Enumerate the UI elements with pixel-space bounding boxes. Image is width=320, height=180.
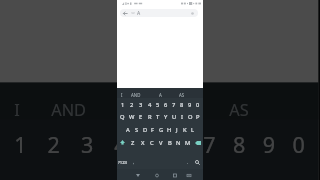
- button[interactable]: 1: [118, 98, 127, 111]
- button[interactable]: .: [183, 156, 192, 169]
- button[interactable]: 9: [255, 120, 285, 168]
- button[interactable]: T: [154, 110, 162, 123]
- button[interactable]: AND: [36, 90, 103, 127]
- button[interactable]: Z: [128, 136, 138, 149]
- button[interactable]: 8: [226, 120, 255, 168]
- button[interactable]: Search: [192, 156, 203, 169]
- button[interactable]: 1: [3, 120, 36, 168]
- button[interactable]: Y: [162, 110, 170, 123]
- button[interactable]: 2: [36, 120, 70, 168]
- button[interactable]: E: [136, 110, 145, 123]
- staticText: O: [188, 113, 193, 121]
- staticText: 1: [121, 101, 125, 109]
- staticText: 7: [203, 131, 218, 160]
- staticText: I: [14, 97, 21, 120]
- button[interactable]: A: [123, 123, 132, 136]
- button[interactable]: J: [173, 123, 181, 136]
- button[interactable]: M: [183, 136, 192, 149]
- button[interactable]: 3: [70, 120, 103, 168]
- button[interactable]: G: [157, 123, 165, 136]
- staticText: R: [114, 175, 129, 180]
- button[interactable]: Home: [153, 171, 161, 179]
- button[interactable]: O: [186, 110, 194, 123]
- staticText: C: [150, 139, 154, 147]
- button[interactable]: 9: [186, 98, 194, 111]
- button[interactable]: AS: [207, 90, 274, 127]
- button[interactable]: R: [145, 110, 154, 123]
- button[interactable]: 0: [285, 120, 315, 168]
- button[interactable]: Hide keyboard: [134, 171, 142, 179]
- button[interactable]: P: [194, 110, 202, 123]
- button[interactable]: I: [113, 90, 131, 100]
- staticText: S: [135, 126, 139, 134]
- button[interactable]: S: [132, 123, 141, 136]
- button[interactable]: U: [170, 110, 178, 123]
- button[interactable]: 4: [103, 120, 137, 168]
- button[interactable]: 7: [196, 120, 226, 168]
- button[interactable]: 5: [137, 120, 166, 168]
- button[interactable]: Shift: [117, 136, 128, 149]
- button[interactable]: AND: [127, 90, 145, 100]
- staticText: 3: [81, 131, 96, 160]
- button[interactable]: AS: [173, 90, 191, 100]
- button[interactable]: 3: [136, 98, 145, 111]
- button[interactable]: L: [189, 123, 197, 136]
- button[interactable]: V: [156, 136, 165, 149]
- button[interactable]: 5: [154, 98, 162, 111]
- button[interactable]: H: [165, 123, 173, 136]
- button[interactable]: W: [127, 110, 136, 123]
- staticText: 2: [130, 101, 134, 109]
- staticText: A: [159, 92, 162, 98]
- button[interactable]: A: [125, 90, 192, 127]
- button[interactable]: 2: [127, 98, 136, 111]
- button[interactable]: R: [103, 164, 137, 180]
- button[interactable]: 0: [194, 98, 202, 111]
- button[interactable]: F: [149, 123, 157, 136]
- button[interactable]: 8: [178, 98, 186, 111]
- button[interactable]: 7: [170, 98, 178, 111]
- button[interactable]: Y: [166, 164, 196, 180]
- button[interactable]: C: [147, 136, 156, 149]
- button[interactable]: K: [181, 123, 189, 136]
- button[interactable]: D: [141, 123, 149, 136]
- button[interactable]: Back: [120, 9, 198, 17]
- button[interactable]: A: [151, 90, 169, 100]
- button[interactable]: T: [137, 164, 166, 180]
- staticText: A: [155, 97, 166, 120]
- staticText: Q: [120, 113, 125, 121]
- button[interactable]: B: [165, 136, 174, 149]
- button[interactable]: 6: [166, 120, 196, 168]
- staticText: H: [167, 126, 172, 134]
- staticText: N: [176, 139, 181, 147]
- button[interactable]: ,: [129, 156, 138, 169]
- button[interactable]: Recents: [171, 171, 179, 179]
- button[interactable]: Q: [118, 110, 127, 123]
- staticText: 0: [196, 101, 200, 109]
- button[interactable]: Switch keyboard: [185, 171, 193, 179]
- button[interactable]: I: [0, 90, 51, 127]
- button[interactable]: X: [138, 136, 147, 149]
- button[interactable]: Backspace: [192, 136, 203, 149]
- staticText: A: [126, 126, 130, 134]
- button[interactable]: U: [196, 164, 226, 180]
- staticText: L: [191, 126, 195, 134]
- staticText: .: [187, 159, 189, 166]
- staticText: 4: [114, 131, 129, 160]
- button[interactable]: ?123: [117, 156, 129, 169]
- button[interactable]: I: [178, 110, 186, 123]
- staticText: 6: [174, 131, 188, 160]
- button[interactable]: N: [174, 136, 183, 149]
- button[interactable]: 6: [162, 98, 170, 111]
- button[interactable]: 4: [145, 98, 154, 111]
- staticText: 3: [139, 101, 143, 109]
- staticText: AS: [229, 97, 252, 120]
